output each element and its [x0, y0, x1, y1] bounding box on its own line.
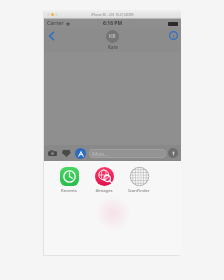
staticText: iPhone SE – iOS 10.2 (14C89) — [91, 13, 134, 17]
button[interactable]: Camera — [47, 148, 58, 159]
staticText: Recents — [61, 188, 77, 194]
staticText: IconFinder — [128, 188, 150, 194]
staticText: 6:16 PM — [103, 20, 123, 27]
button[interactable]: Back — [46, 30, 58, 42]
staticText: Kate — [108, 44, 118, 50]
button[interactable]: IconFinder — [125, 167, 153, 194]
button[interactable]: KB — [106, 30, 119, 50]
button[interactable]: Digital Touch — [61, 148, 72, 159]
staticText: #images — [95, 188, 113, 194]
button[interactable]: Microphone — [168, 148, 178, 158]
button[interactable]: Recents — [55, 167, 83, 194]
staticText: iMess... — [92, 151, 108, 157]
staticText: Carrier — [47, 20, 64, 27]
button[interactable]: App Store — [75, 148, 86, 159]
button[interactable]: #images — [90, 167, 118, 194]
button[interactable]: iMess... — [89, 149, 166, 158]
staticText: KB — [109, 33, 116, 40]
staticText: i — [173, 32, 175, 39]
button[interactable]: Details — [169, 31, 178, 40]
